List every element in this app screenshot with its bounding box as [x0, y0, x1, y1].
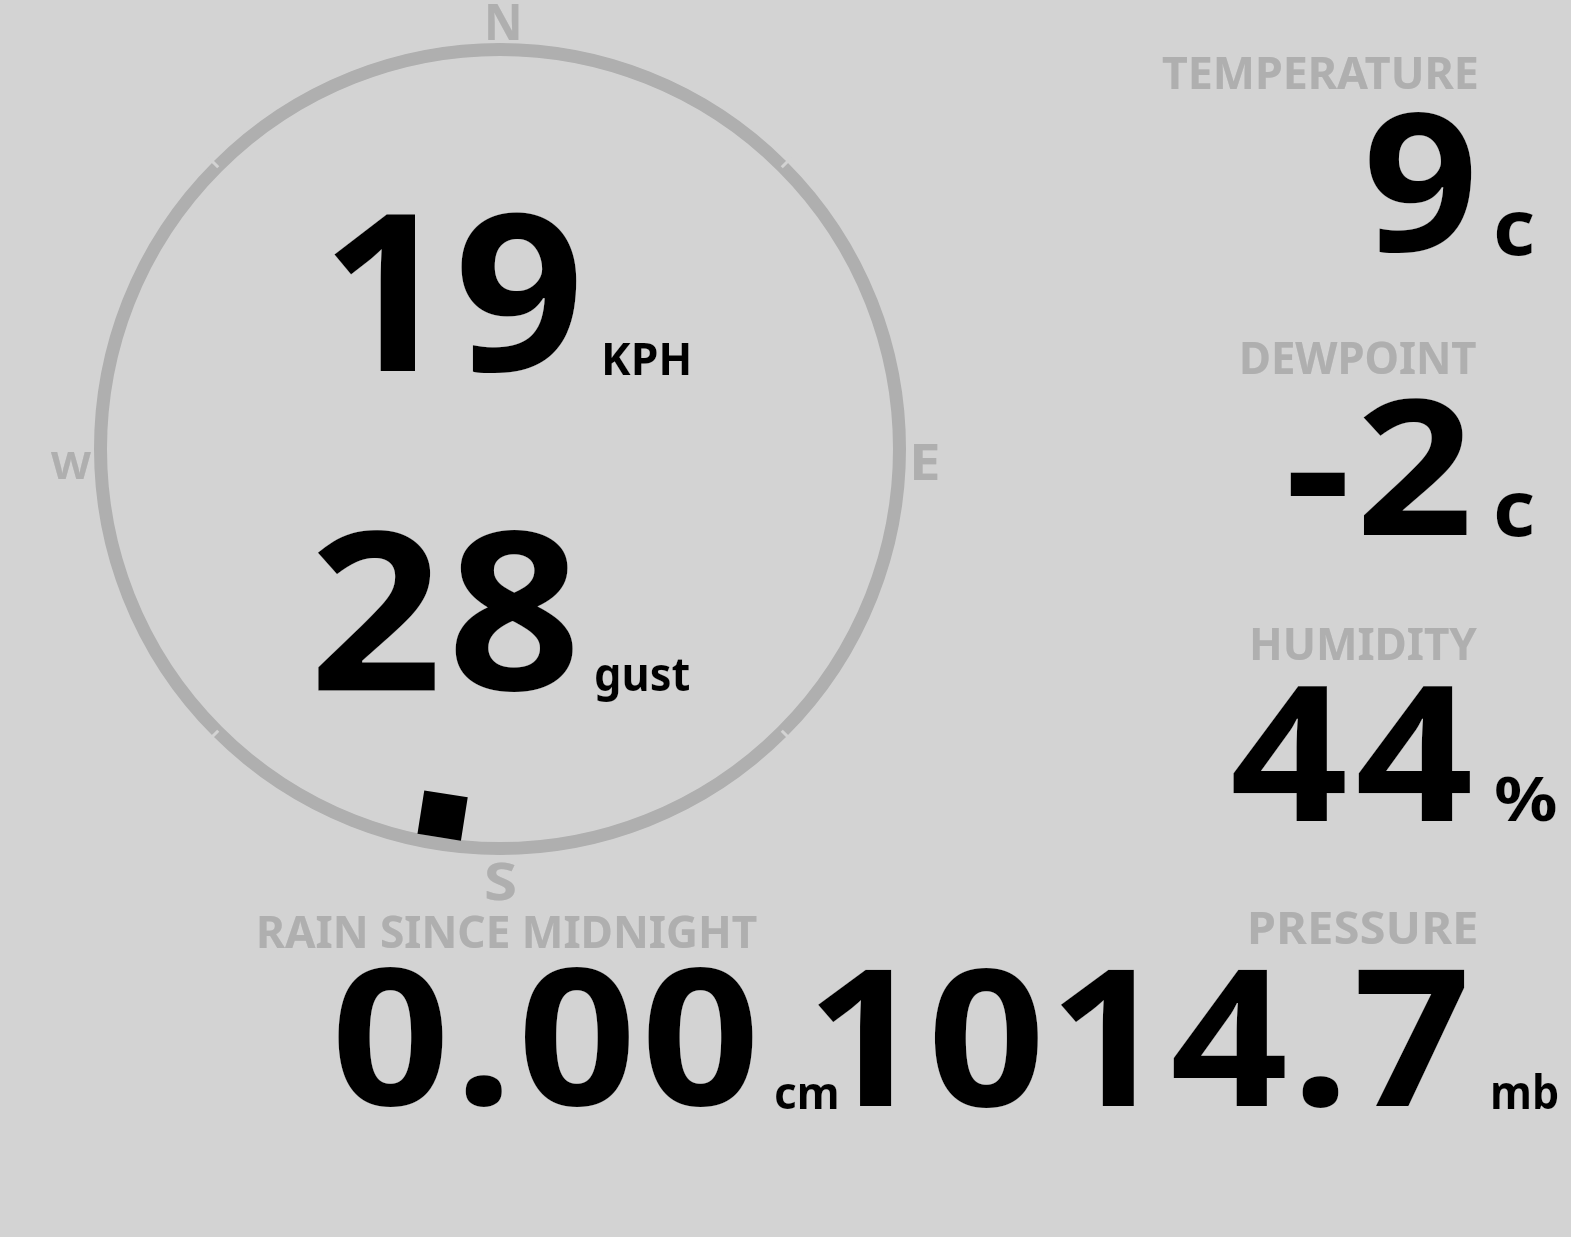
staticText: RAIN SINCE MIDNIGHT [256, 900, 757, 961]
staticText: TEMPERATURE [1162, 41, 1479, 103]
staticText: S [484, 845, 518, 915]
staticText: PRESSURE [1247, 896, 1479, 957]
staticText: W [51, 439, 91, 490]
staticText: 19 [321, 136, 588, 435]
staticText: N [484, 0, 523, 54]
staticText: % [1494, 756, 1559, 839]
staticText: 0.00 [331, 902, 765, 1161]
staticText: gust [594, 642, 691, 705]
staticText: cm [774, 1061, 840, 1123]
button[interactable]: Wind 19 kph, gusting 28 kph, from the so… [0, 0, 960, 905]
staticText: KPH [601, 326, 693, 388]
staticText: c [1493, 173, 1536, 277]
staticText: 9 [1363, 46, 1479, 307]
staticText: c [1493, 454, 1536, 558]
staticText: E [909, 427, 941, 494]
staticText: -2 [1285, 332, 1479, 590]
staticText: HUMIDITY [1249, 612, 1477, 673]
staticText: 1014.7 [806, 902, 1474, 1162]
staticText: DEWPOINT [1239, 326, 1477, 387]
staticText: mb [1490, 1060, 1559, 1122]
button[interactable]: Dewpoint minus 2 degrees Celsius [1000, 305, 1571, 585]
button[interactable]: Temperature 9 degrees Celsius [1000, 20, 1571, 300]
staticText: 44 [1230, 618, 1481, 876]
button[interactable]: Pressure 1014.7 millibar [855, 900, 1571, 1135]
staticText: 28 [309, 455, 586, 755]
button[interactable]: Humidity 44 percent [1000, 590, 1571, 870]
button[interactable]: Rain since midnight 0.00 centimetres [230, 900, 850, 1135]
